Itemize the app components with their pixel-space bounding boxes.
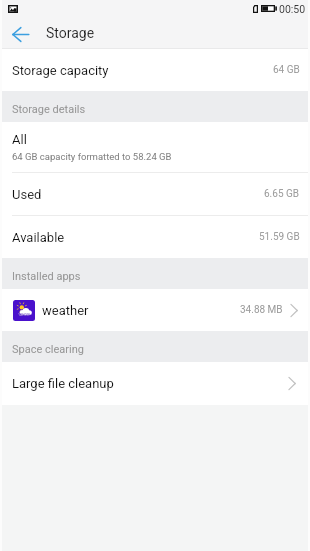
staticText: Available — [12, 230, 65, 245]
button[interactable]: Large file cleanup — [0, 362, 310, 405]
button[interactable]: Available — [0, 216, 310, 258]
staticText: Storage capacity — [12, 63, 109, 78]
button[interactable]: Used — [0, 173, 310, 215]
staticText: 34.88 MB — [240, 304, 283, 316]
other: Screenshot — [8, 5, 18, 13]
staticText: 00:50 — [279, 3, 306, 15]
staticText: Large file cleanup — [12, 376, 114, 391]
button[interactable]: YAHOO! — [0, 289, 310, 331]
staticText: 51.59 GB — [259, 231, 300, 243]
staticText: Storage details — [12, 103, 86, 116]
staticText: 6.65 GB — [264, 188, 300, 200]
staticText: Storage — [46, 25, 95, 41]
staticText: YAHOO! — [18, 313, 30, 317]
staticText: Space clearing — [12, 343, 84, 356]
staticText: Installed apps — [12, 270, 81, 283]
staticText: 64 GB — [273, 64, 300, 76]
staticText: All — [12, 132, 27, 147]
staticText: Used — [12, 187, 42, 202]
staticText: 64 GB capacity formatted to 58.24 GB — [12, 151, 172, 162]
button[interactable]: All — [0, 122, 310, 172]
staticText: weather — [42, 303, 89, 318]
button[interactable]: Storage capacity — [0, 49, 310, 91]
button[interactable]: Back — [0, 17, 37, 49]
